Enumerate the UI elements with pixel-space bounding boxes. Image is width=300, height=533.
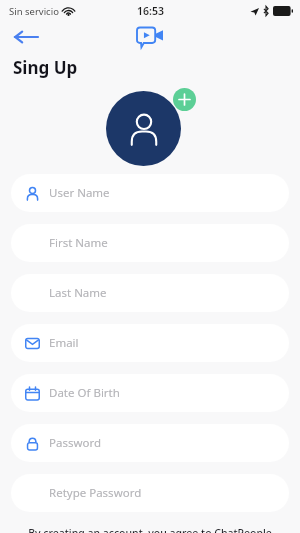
- button[interactable]: Last Name: [11, 274, 289, 312]
- staticText: Date Of Birth: [49, 385, 120, 401]
- button[interactable]: Profile photo: [106, 91, 181, 166]
- button[interactable]: Add photo: [173, 88, 196, 111]
- staticText: 16:53: [137, 4, 164, 18]
- staticText: Password: [49, 435, 102, 451]
- button[interactable]: User Name: [11, 174, 289, 212]
- button[interactable]: Password: [11, 424, 289, 462]
- staticText: By creating an account, you agree to Cha…: [16, 526, 284, 533]
- button[interactable]: Back: [8, 22, 44, 52]
- staticText: First Name: [49, 235, 108, 251]
- button[interactable]: Video chat: [133, 22, 167, 52]
- staticText: Sin servicio: [9, 5, 59, 18]
- button[interactable]: First Name: [11, 224, 289, 262]
- button[interactable]: Date Of Birth: [11, 374, 289, 412]
- staticText: Sing Up: [13, 56, 78, 79]
- button[interactable]: Retype Password: [11, 474, 289, 512]
- staticText: Retype Password: [49, 485, 142, 501]
- staticText: Email: [49, 335, 79, 351]
- button[interactable]: Email: [11, 324, 289, 362]
- staticText: Last Name: [49, 285, 107, 301]
- staticText: User Name: [49, 185, 110, 201]
